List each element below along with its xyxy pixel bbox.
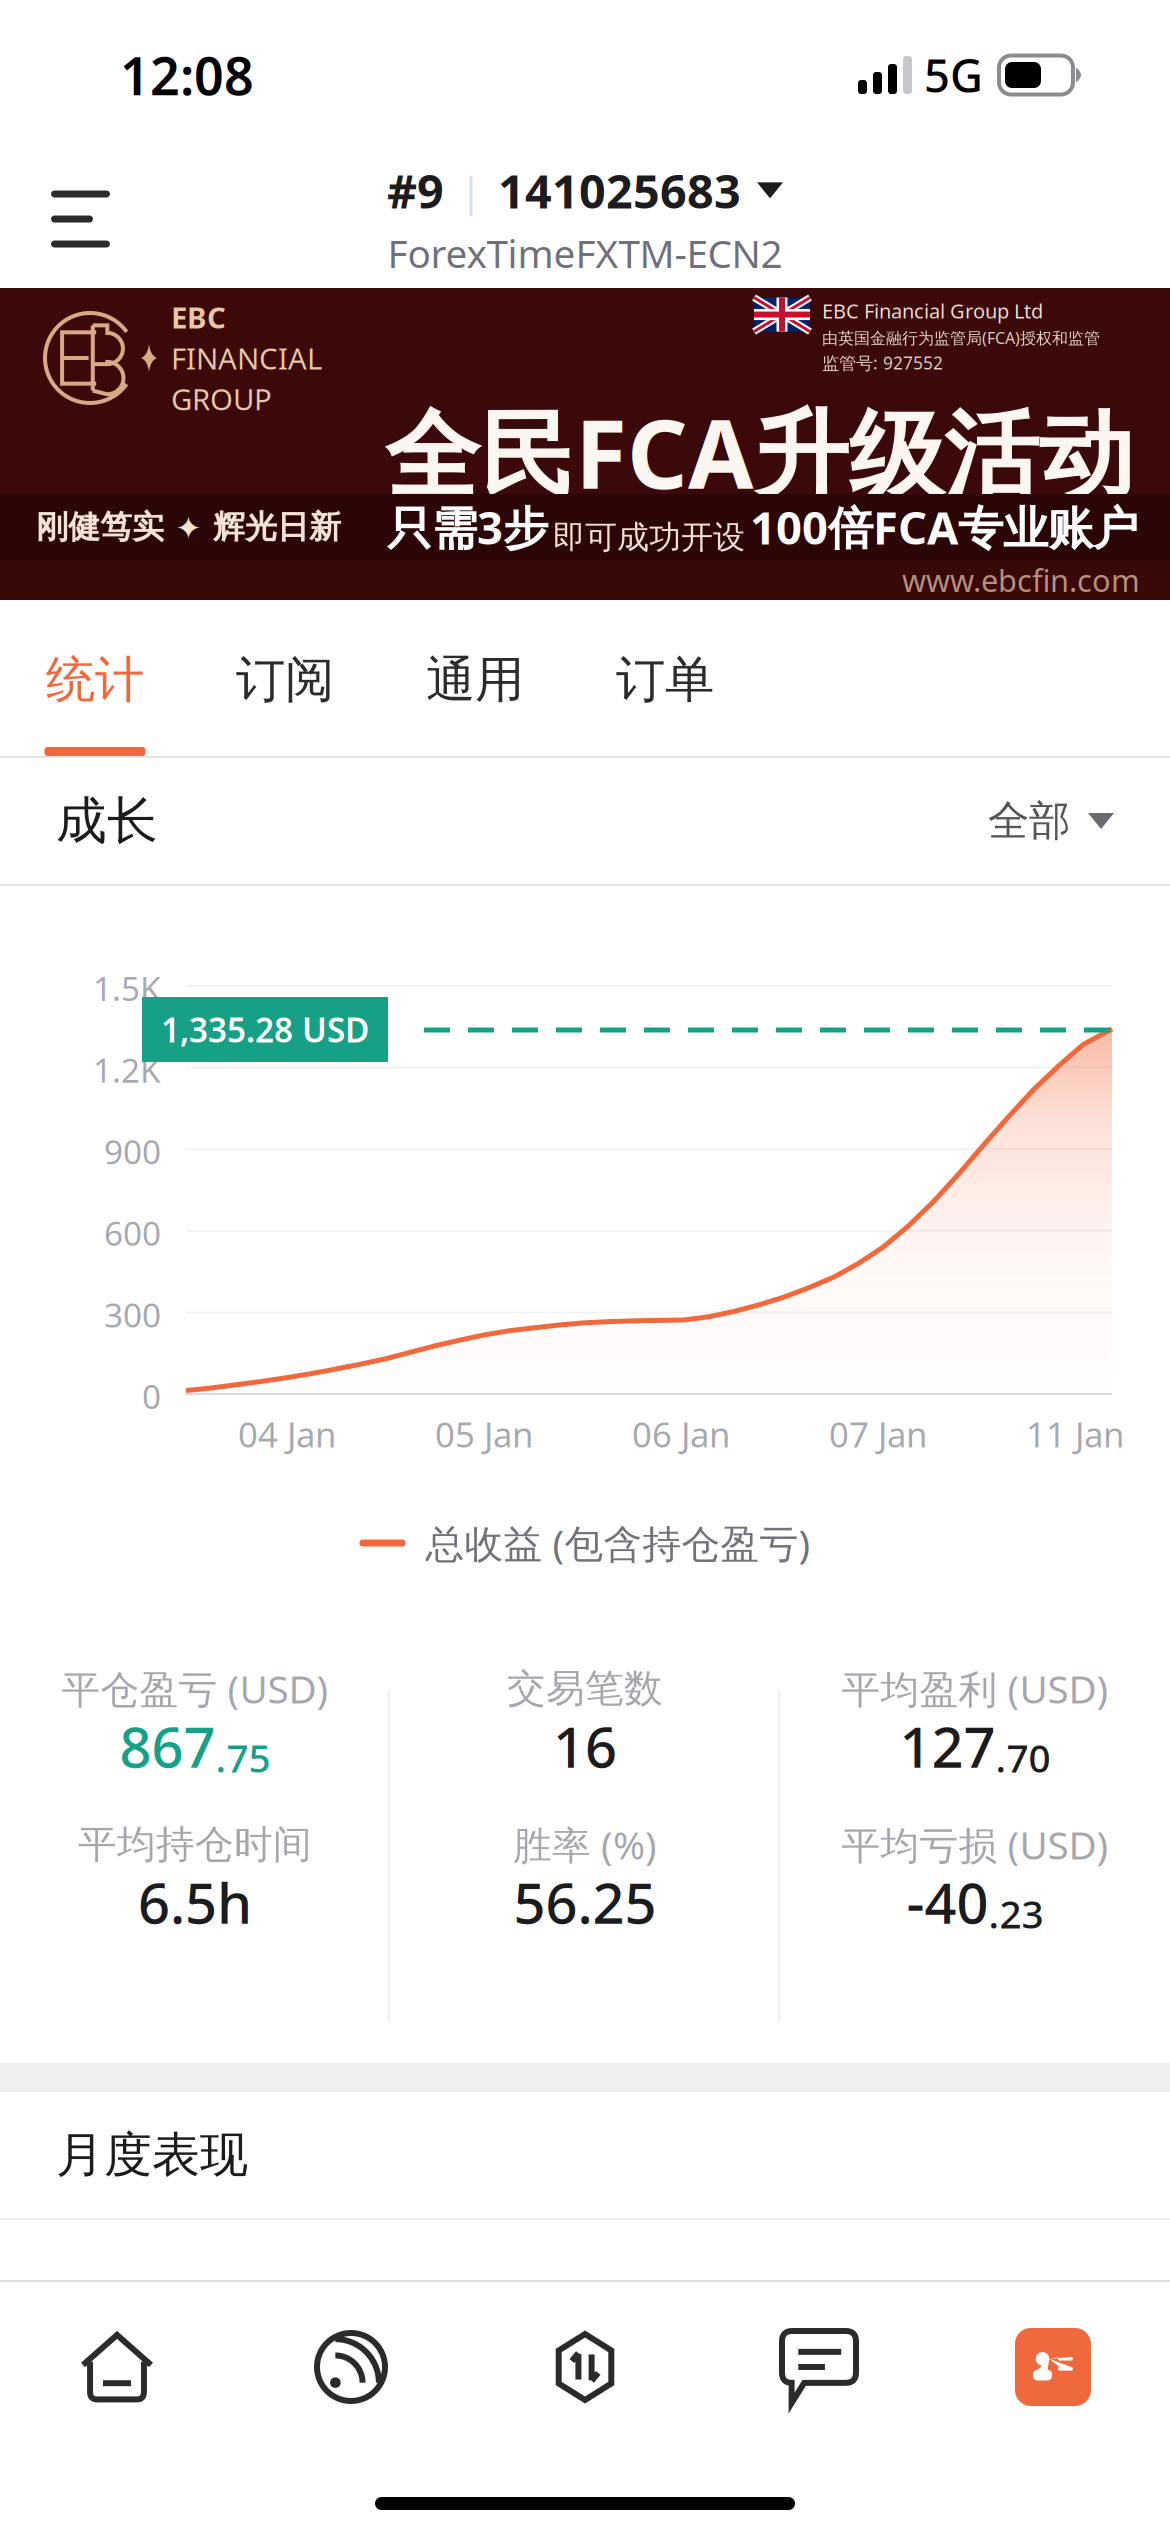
staticText: EBC Financial Group Ltd: [822, 298, 1043, 324]
staticText: 56.25: [513, 1865, 656, 1939]
staticText: 平均盈利 (USD): [841, 1663, 1108, 1714]
button[interactable]: Quotes: [234, 2282, 468, 2452]
staticText: EBC: [171, 298, 226, 337]
button[interactable]: 全部: [988, 796, 1114, 846]
button[interactable]: 通用: [380, 600, 570, 756]
staticText: 16: [553, 1709, 617, 1783]
button[interactable]: 统计: [0, 600, 190, 756]
button[interactable]: Messages: [702, 2282, 936, 2452]
staticText: 1,335.28 USD: [161, 1007, 369, 1052]
staticText: 867: [119, 1709, 215, 1783]
staticText: 刚健笃实 ✦ 辉光日新: [36, 507, 341, 547]
staticText: 总收益 (包含持仓盈亏): [425, 1517, 810, 1569]
staticText: 平均持仓时间: [78, 1821, 312, 1868]
staticText: 127: [899, 1709, 995, 1783]
staticText: 平均亏损 (USD): [841, 1819, 1108, 1870]
button[interactable]: 订单: [570, 600, 760, 756]
staticText: ForexTimeFXTM-ECN2: [387, 227, 782, 279]
button[interactable]: Trade: [468, 2282, 702, 2452]
staticText: GROUP: [171, 379, 272, 418]
staticText: 04 Jan: [238, 1411, 336, 1457]
staticText: 统计: [46, 649, 144, 710]
staticText: .70: [995, 1732, 1050, 1783]
staticText: 300: [104, 1292, 161, 1337]
staticText: 0: [142, 1374, 161, 1418]
staticText: 141025683: [498, 159, 741, 221]
button[interactable]: 订阅: [190, 600, 380, 756]
button[interactable]: Accounts: [936, 2282, 1170, 2452]
staticText: 06 Jan: [632, 1411, 730, 1457]
staticText: FINANCIAL: [171, 338, 322, 377]
staticText: 5G: [924, 45, 983, 105]
staticText: -40: [906, 1865, 988, 1939]
staticText: www.ebcfin.com: [902, 560, 1140, 600]
staticText: 全民FCA升级活动: [385, 389, 1134, 515]
staticText: 1.2K: [93, 1048, 161, 1092]
staticText: 11 Jan: [1026, 1411, 1124, 1457]
staticText: 05 Jan: [435, 1411, 533, 1457]
staticText: 全部: [988, 796, 1070, 846]
staticText: .75: [215, 1732, 270, 1783]
staticText: 胜率 (%): [513, 1819, 657, 1870]
staticText: 1.5K: [93, 966, 161, 1010]
staticText: 12:08: [120, 40, 254, 110]
staticText: 900: [104, 1129, 161, 1173]
staticText: 6.5h: [138, 1865, 252, 1939]
staticText: 100倍FCA专业账户: [750, 497, 1138, 557]
staticText: 通用: [426, 649, 524, 710]
staticText: |: [460, 164, 482, 217]
button[interactable]: Home: [0, 2282, 234, 2452]
staticText: 交易笔数: [507, 1665, 663, 1712]
staticText: 订阅: [236, 649, 334, 710]
staticText: 订单: [616, 649, 714, 710]
staticText: 只需3步: [387, 497, 548, 557]
staticText: 平仓盈亏 (USD): [61, 1663, 328, 1714]
staticText: #9: [387, 159, 444, 221]
staticText: 月度表现: [56, 2125, 248, 2184]
staticText: 07 Jan: [829, 1411, 927, 1457]
staticText: 即可成功开设: [553, 518, 745, 557]
staticText: 监管号: 927552: [822, 351, 943, 374]
staticText: .23: [988, 1888, 1043, 1939]
staticText: 成长: [56, 790, 158, 852]
staticText: 由英国金融行为监管局(FCA)授权和监管: [822, 327, 1100, 348]
staticText: 600: [104, 1211, 161, 1255]
button[interactable]: Menu: [0, 150, 155, 287]
